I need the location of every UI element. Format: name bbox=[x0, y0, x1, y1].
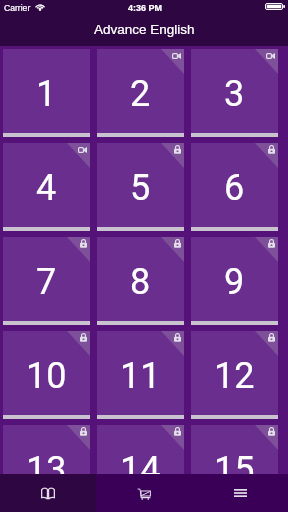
staticText: 2 bbox=[130, 73, 151, 115]
staticText: 6 bbox=[224, 167, 245, 209]
staticText: 5 bbox=[130, 167, 151, 209]
staticText: 15 bbox=[214, 449, 255, 474]
staticText: 13 bbox=[26, 449, 67, 474]
staticText: 4:36 PM bbox=[128, 3, 163, 13]
staticText: 12 bbox=[214, 355, 255, 397]
button[interactable]: Library bbox=[0, 474, 96, 512]
button[interactable]: 10 bbox=[3, 331, 90, 419]
button[interactable]: 2 bbox=[97, 49, 184, 137]
staticText: Carrier bbox=[4, 3, 31, 13]
button[interactable]: 9 bbox=[191, 237, 278, 325]
staticText: 10 bbox=[26, 355, 67, 397]
staticText: 14 bbox=[120, 449, 161, 474]
staticText: 7 bbox=[36, 261, 57, 303]
button[interactable]: 15 bbox=[191, 425, 278, 474]
button[interactable]: 5 bbox=[97, 143, 184, 231]
button[interactable]: 1 bbox=[3, 49, 90, 137]
button[interactable]: 14 bbox=[97, 425, 184, 474]
button[interactable]: 3 bbox=[191, 49, 278, 137]
button[interactable]: Cart bbox=[96, 474, 192, 512]
button[interactable]: 8 bbox=[97, 237, 184, 325]
staticText: Advance English bbox=[94, 22, 195, 37]
staticText: 3 bbox=[224, 73, 245, 115]
button[interactable]: 12 bbox=[191, 331, 278, 419]
button[interactable]: 6 bbox=[191, 143, 278, 231]
button[interactable]: Menu bbox=[192, 474, 288, 512]
staticText: 11 bbox=[120, 355, 161, 397]
staticText: 8 bbox=[130, 261, 151, 303]
staticText: 1 bbox=[36, 73, 57, 115]
button[interactable]: 11 bbox=[97, 331, 184, 419]
button[interactable]: 13 bbox=[3, 425, 90, 474]
button[interactable]: 7 bbox=[3, 237, 90, 325]
staticText: 4 bbox=[36, 167, 57, 209]
button[interactable]: 4 bbox=[3, 143, 90, 231]
staticText: 9 bbox=[224, 261, 245, 303]
